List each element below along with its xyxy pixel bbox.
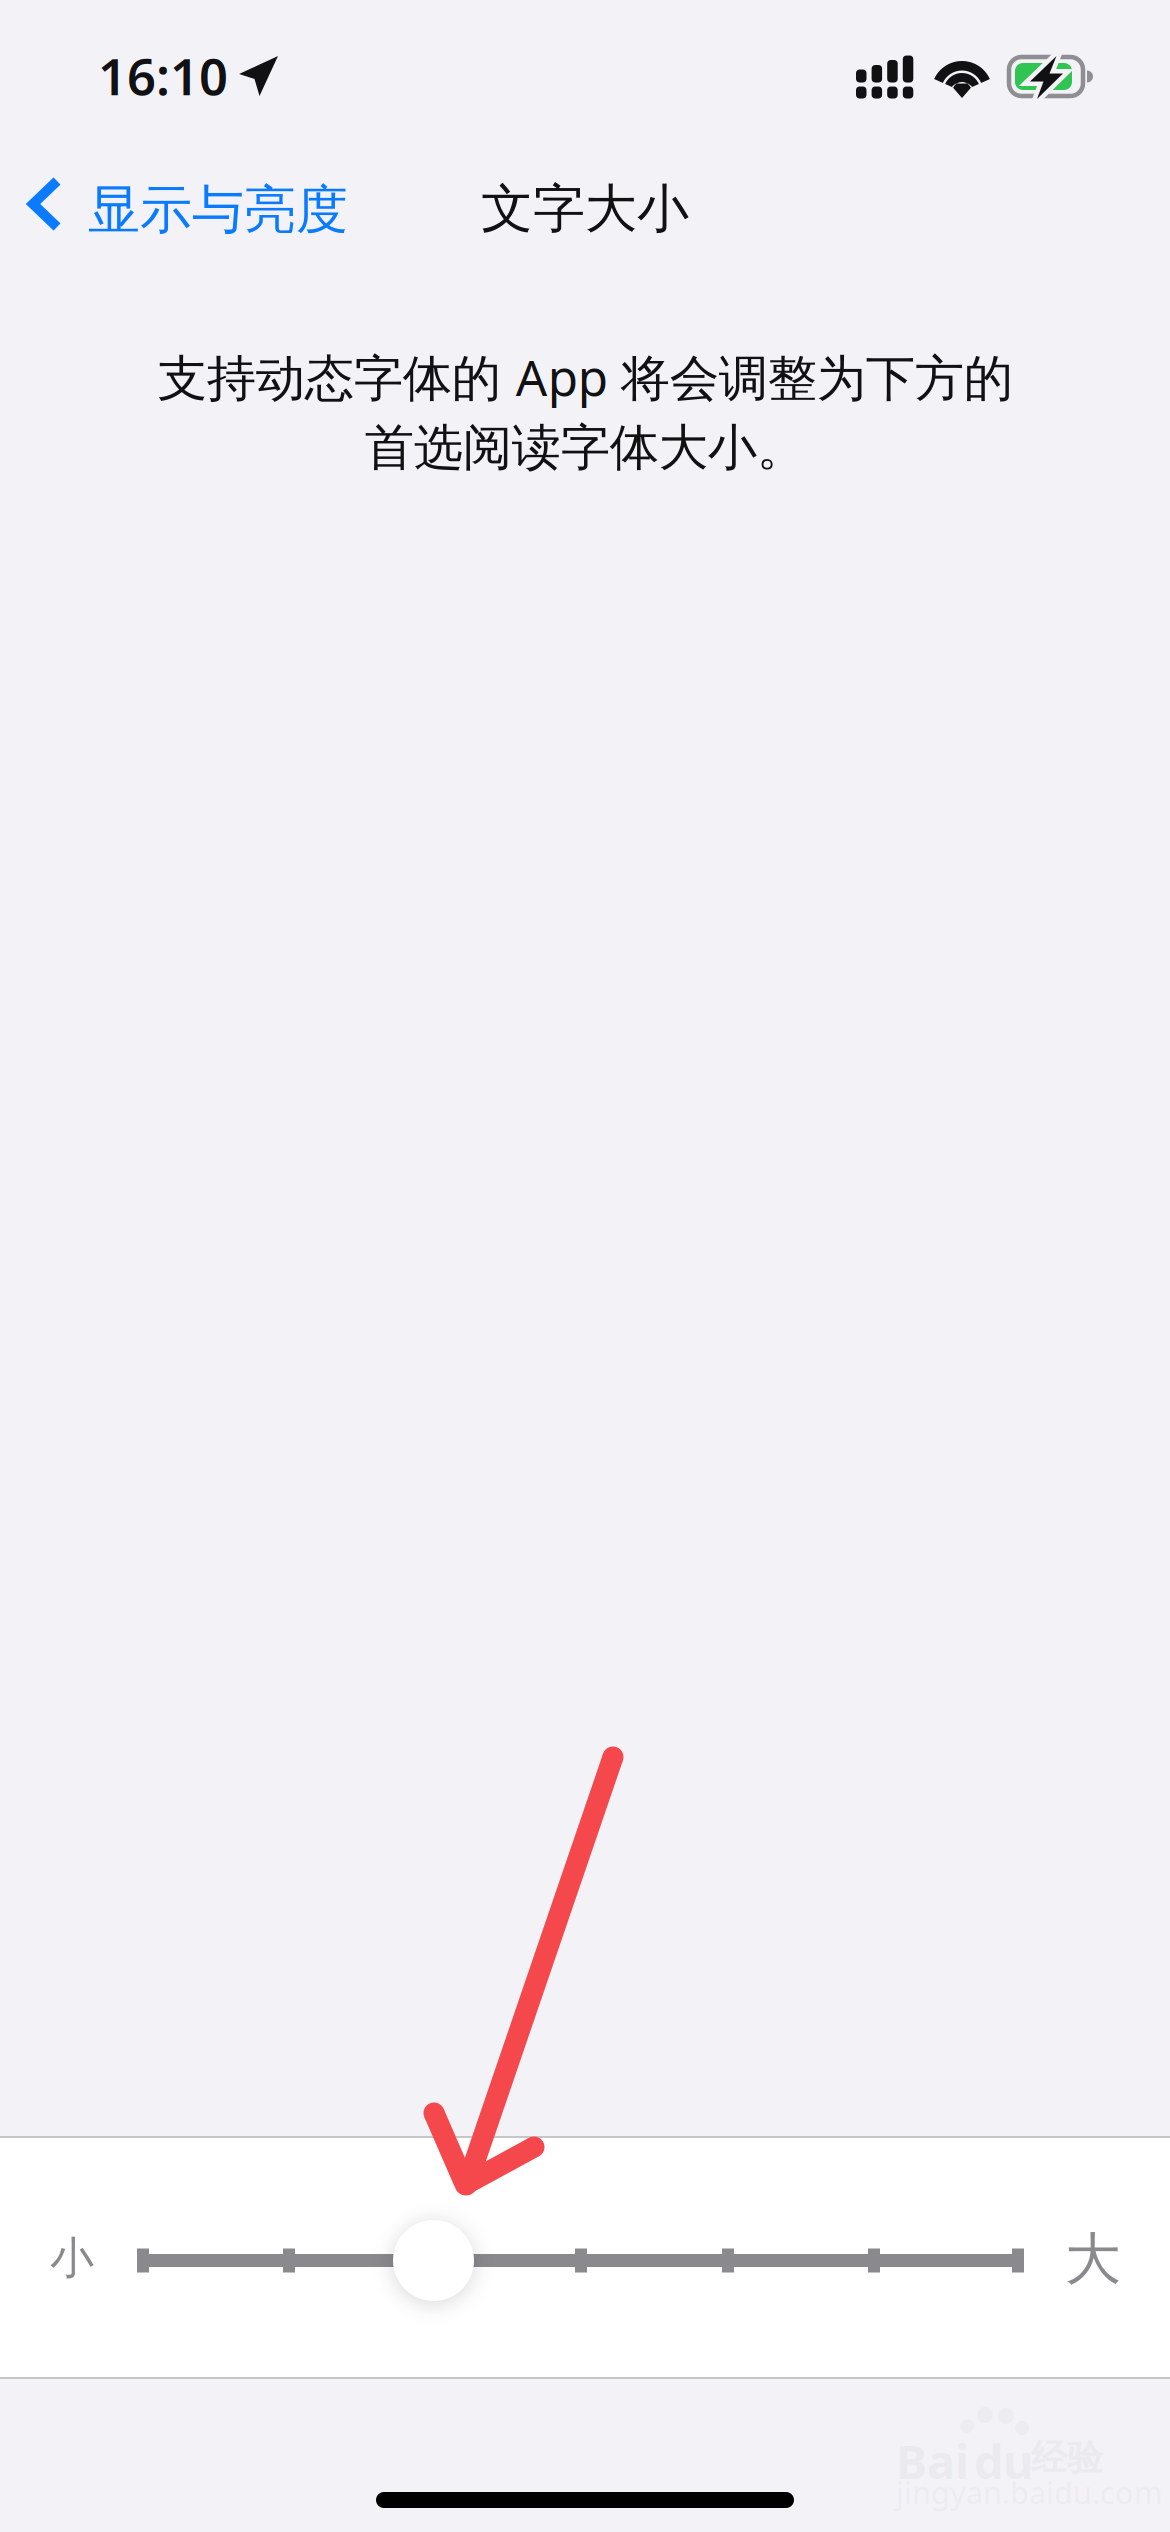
staticText: 大	[1065, 2225, 1121, 2294]
staticText: 小	[50, 2231, 94, 2285]
staticText: 16:10	[98, 42, 228, 109]
staticText: 支持动态字体的 App 将会调整为下方的首选阅读字体大小。	[157, 344, 1012, 478]
staticText: 经验	[1031, 2436, 1103, 2480]
button[interactable]: 小	[0, 2138, 1170, 2377]
staticText: Bai	[896, 2430, 969, 2492]
button[interactable]: 显示与亮度	[0, 138, 380, 270]
staticText: 文字大小	[481, 177, 689, 241]
staticText: 显示与亮度	[88, 178, 348, 242]
staticText: du	[974, 2430, 1033, 2492]
